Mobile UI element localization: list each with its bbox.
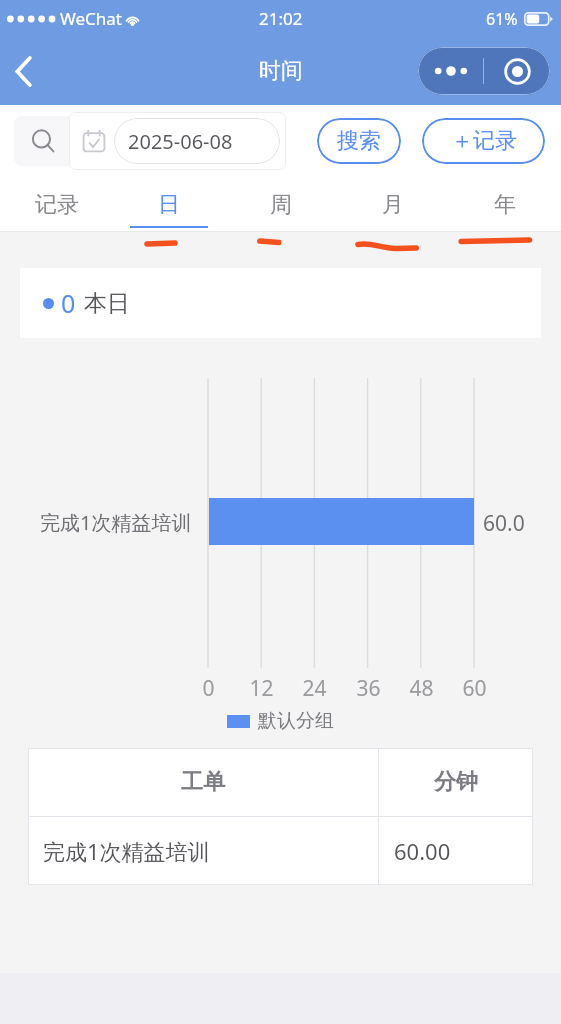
staticText: 60	[462, 674, 487, 703]
staticText: 完成1次精益培训	[40, 509, 192, 536]
staticText: 搜索	[337, 127, 381, 155]
staticText: 24	[302, 674, 327, 703]
button[interactable]: 日	[113, 177, 225, 232]
staticText: 60.00	[394, 836, 451, 866]
staticText: 工单	[181, 768, 225, 796]
button[interactable]: 搜索	[317, 118, 401, 164]
staticText: 时间	[259, 57, 303, 85]
button[interactable]: 月	[337, 177, 449, 232]
staticText: 本日	[84, 289, 130, 318]
button[interactable]: 周	[225, 177, 337, 232]
staticText: 默认分组	[258, 709, 334, 733]
staticText: 日	[158, 191, 180, 219]
staticText: 分钟	[434, 768, 478, 796]
staticText: 周	[270, 191, 292, 219]
staticText: 61%	[486, 8, 518, 30]
staticText: 0	[61, 286, 76, 320]
staticText: 2025-06-08	[128, 128, 233, 155]
staticText: 48	[409, 674, 434, 703]
button[interactable]: Search	[14, 116, 72, 166]
button[interactable]: More options	[418, 47, 483, 95]
button[interactable]: 完成1次精益培训	[28, 817, 533, 885]
staticText: 60.0	[483, 509, 525, 538]
staticText: ＋记录	[451, 127, 517, 155]
staticText: 36	[356, 674, 381, 703]
button[interactable]: 记录	[0, 177, 113, 232]
button[interactable]: 年	[449, 177, 561, 232]
button[interactable]: Close	[484, 47, 550, 95]
staticText: 12	[249, 674, 274, 703]
staticText: 0	[202, 674, 215, 703]
staticText: 记录	[35, 191, 79, 219]
staticText: 年	[494, 191, 516, 219]
staticText: 21:02	[259, 7, 303, 30]
button[interactable]: 0	[20, 268, 541, 338]
button[interactable]: Back	[0, 47, 48, 95]
staticText: 完成1次精益培训	[43, 836, 210, 866]
staticText: 月	[382, 191, 404, 219]
button[interactable]: 2025-06-08	[69, 112, 286, 170]
staticText: WeChat	[60, 7, 122, 30]
button[interactable]: ＋记录	[422, 118, 545, 164]
